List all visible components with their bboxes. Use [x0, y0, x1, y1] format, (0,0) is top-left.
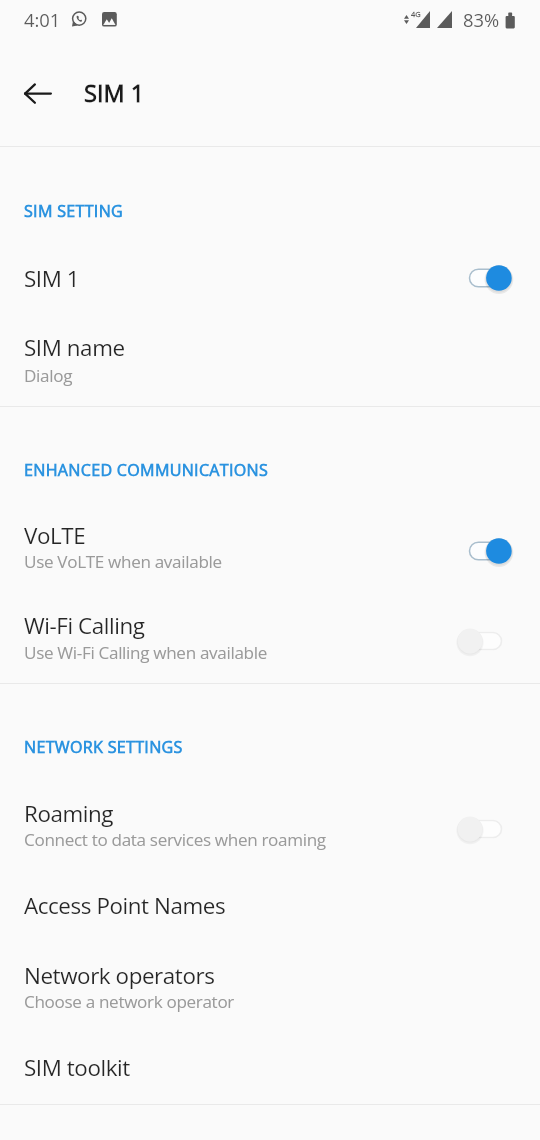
- staticText: 4G: [411, 9, 421, 19]
- button[interactable]: Roaming: [0, 775, 540, 868]
- staticText: Use Wi-Fi Calling when available: [24, 641, 267, 664]
- staticText: 4:01: [24, 7, 61, 32]
- staticText: SIM 1: [84, 77, 145, 109]
- staticText: NETWORK SETTINGS: [24, 736, 183, 758]
- button[interactable]: SIM name: [0, 310, 540, 405]
- staticText: SIM 1: [24, 263, 80, 294]
- button[interactable]: Toggle off: [450, 805, 512, 853]
- staticText: Wi-Fi Calling: [24, 610, 145, 641]
- staticText: SIM SETTING: [24, 200, 124, 222]
- button[interactable]: SIM 1: [0, 236, 540, 310]
- button[interactable]: Network operators: [0, 938, 540, 1030]
- button[interactable]: Toggle on: [456, 254, 518, 302]
- staticText: Network operators: [24, 960, 215, 991]
- button[interactable]: Toggle on: [456, 527, 518, 575]
- staticText: ENHANCED COMMUNICATIONS: [24, 459, 269, 481]
- button[interactable]: Wi-Fi Calling: [0, 588, 540, 682]
- staticText: VoLTE: [24, 520, 86, 551]
- staticText: Access Point Names: [24, 890, 226, 921]
- staticText: Choose a network operator: [24, 990, 234, 1013]
- button[interactable]: Access Point Names: [0, 868, 540, 938]
- button[interactable]: Back: [13, 70, 61, 118]
- staticText: SIM toolkit: [24, 1052, 130, 1083]
- staticText: Dialog: [24, 364, 73, 387]
- staticText: Connect to data services when roaming: [24, 828, 326, 851]
- button[interactable]: SIM toolkit: [0, 1030, 540, 1103]
- staticText: Roaming: [24, 798, 114, 829]
- staticText: Use VoLTE when available: [24, 550, 222, 573]
- button[interactable]: Toggle off: [450, 617, 512, 665]
- staticText: 83%: [463, 7, 500, 32]
- button[interactable]: VoLTE: [0, 496, 540, 588]
- staticText: SIM name: [24, 332, 125, 363]
